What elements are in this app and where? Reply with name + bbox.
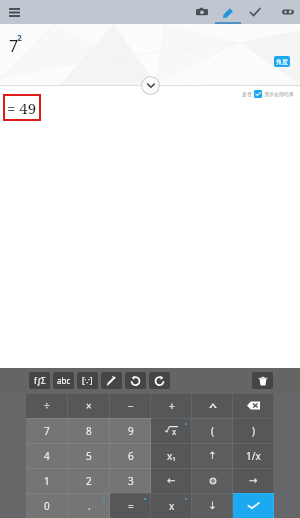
button[interactable]: More xyxy=(276,0,300,24)
staticText: 9 xyxy=(128,424,134,438)
other: Power xyxy=(192,393,233,418)
button[interactable]: Confirm xyxy=(243,0,267,24)
staticText: 1 xyxy=(44,474,50,488)
staticText: 7 xyxy=(9,35,19,57)
staticText: 8 xyxy=(86,424,92,438)
staticText: 角度 xyxy=(276,58,288,66)
staticText: x xyxy=(169,499,175,513)
button[interactable]: x xyxy=(151,418,192,443)
button[interactable]: Handwrite xyxy=(101,372,122,389)
staticText: − xyxy=(128,399,134,413)
button[interactable]: 0 xyxy=(26,493,68,518)
staticText: = 49 xyxy=(7,98,37,118)
staticText: ) xyxy=(252,424,255,438)
button[interactable]: − xyxy=(110,393,151,418)
button[interactable]: ÷ xyxy=(26,393,68,418)
button[interactable]: Functions xyxy=(29,372,50,389)
button[interactable]: 角度 xyxy=(274,56,290,67)
button[interactable]: 6 xyxy=(110,443,151,468)
staticText: ↑ xyxy=(208,450,217,462)
other: Backspace xyxy=(233,393,274,418)
staticText: ← xyxy=(167,475,176,487)
button[interactable]: Backspace xyxy=(233,393,274,418)
staticText: 2 xyxy=(86,474,92,488)
staticText: → xyxy=(249,475,258,487)
staticText: 是否 xyxy=(242,91,252,97)
staticText: + xyxy=(169,399,175,413)
button[interactable]: 3 xyxy=(110,468,151,493)
staticText: f∫Σ xyxy=(34,375,46,386)
button[interactable]: Letters xyxy=(53,372,74,389)
button[interactable]: 2 xyxy=(68,468,110,493)
button[interactable]: Show all results xyxy=(254,90,262,98)
staticText: 2 xyxy=(17,32,22,44)
staticText: ↓ xyxy=(208,500,217,512)
staticText: abc xyxy=(57,375,71,386)
button[interactable]: Undo xyxy=(125,372,146,389)
button[interactable]: Camera xyxy=(190,0,214,24)
staticText: × xyxy=(86,399,92,413)
button[interactable]: Symbols xyxy=(77,372,98,389)
button[interactable]: 8 xyxy=(68,418,110,443)
button[interactable]: + xyxy=(151,393,192,418)
button[interactable]: Enter xyxy=(233,493,274,518)
button[interactable]: Degree xyxy=(192,468,233,493)
button[interactable]: ↓ xyxy=(192,493,233,518)
staticText: 3 xyxy=(128,474,134,488)
button[interactable]: ( xyxy=(192,418,233,443)
staticText: = xyxy=(128,499,134,513)
staticText: 6 xyxy=(128,449,134,463)
button[interactable]: ) xyxy=(233,418,274,443)
button[interactable]: x xyxy=(151,493,192,518)
staticText: 4 xyxy=(44,449,50,463)
staticText: ÷ xyxy=(44,399,50,413)
staticText: 显示全部结果 xyxy=(264,91,294,97)
button[interactable]: = xyxy=(110,493,151,518)
staticText: . xyxy=(88,499,91,513)
staticText: 1/x xyxy=(246,449,261,463)
staticText: 7 xyxy=(44,424,50,438)
staticText: ( xyxy=(211,424,214,438)
staticText: x₁ xyxy=(167,449,176,463)
other: Degree xyxy=(192,468,233,493)
button[interactable]: Handwriting xyxy=(215,0,241,24)
staticText: x xyxy=(172,426,177,437)
other: Enter xyxy=(233,493,274,518)
button[interactable]: ↑ xyxy=(192,443,233,468)
button[interactable]: 7 xyxy=(26,418,68,443)
button[interactable]: . xyxy=(68,493,110,518)
staticText: [∵] xyxy=(82,375,93,386)
button[interactable]: Expand xyxy=(141,76,160,95)
button[interactable]: 5 xyxy=(68,443,110,468)
button[interactable]: Redo xyxy=(149,372,170,389)
staticText: 5 xyxy=(86,449,92,463)
button[interactable]: × xyxy=(68,393,110,418)
button[interactable]: Menu xyxy=(5,0,24,24)
button[interactable]: Delete xyxy=(252,372,273,389)
staticText: 0 xyxy=(44,499,50,513)
button[interactable]: x₁ xyxy=(151,443,192,468)
button[interactable]: 9 xyxy=(110,418,151,443)
button[interactable]: ← xyxy=(151,468,192,493)
button[interactable]: 4 xyxy=(26,443,68,468)
button[interactable]: 1/x xyxy=(233,443,274,468)
button[interactable]: Power xyxy=(192,393,233,418)
button[interactable]: 1 xyxy=(26,468,68,493)
button[interactable]: → xyxy=(233,468,274,493)
